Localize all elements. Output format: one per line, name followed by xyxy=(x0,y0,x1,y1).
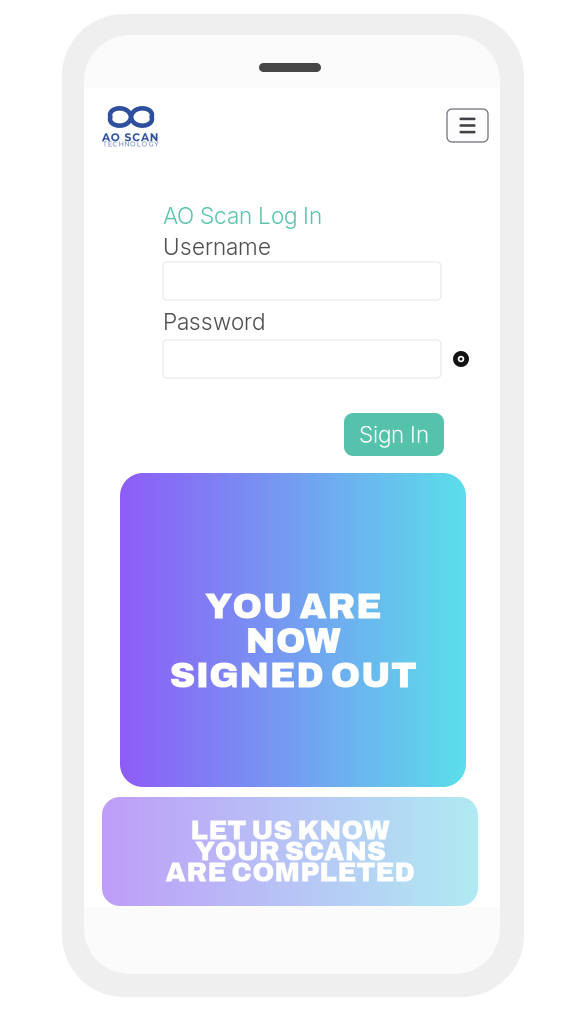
button[interactable]: Menu xyxy=(447,109,488,142)
button[interactable]: Show password xyxy=(452,350,470,368)
staticText: LET US KNOW YOUR SCANS ARE COMPLETED xyxy=(165,816,415,887)
staticText: AO SCAN xyxy=(102,131,159,144)
staticText: TECHNOLOGY xyxy=(103,140,158,148)
staticText: Username xyxy=(163,233,271,260)
staticText: Password xyxy=(163,308,265,335)
staticText: Sign In xyxy=(359,421,429,448)
button[interactable]: Sign In xyxy=(344,413,444,456)
staticText: YOU ARE NOW SIGNED OUT xyxy=(169,587,417,695)
staticText: AO Scan Log In xyxy=(163,202,322,229)
